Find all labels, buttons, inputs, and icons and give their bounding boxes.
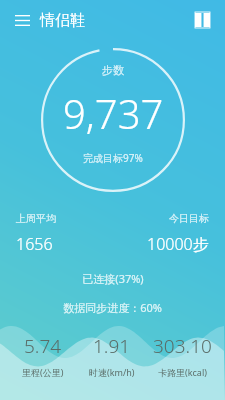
staticText: 卡路里(kcal) (158, 366, 207, 378)
staticText: 完成目标97% (83, 151, 143, 165)
staticText: 已连接(37%) (82, 271, 144, 286)
staticText: 9,737 (63, 86, 164, 140)
staticText: 1656 (16, 233, 53, 255)
button[interactable]: 5.74 (8, 333, 77, 378)
staticText: 上周平均 (16, 212, 56, 225)
button[interactable]: Map (185, 3, 219, 37)
staticText: 303.10 (153, 333, 212, 359)
staticText: 里程(公里) (22, 366, 64, 378)
staticText: 今日目标 (169, 212, 209, 225)
staticText: 时速(km/h) (89, 366, 135, 378)
staticText: 步数 (102, 63, 124, 77)
staticText: 5.74 (24, 333, 62, 359)
button[interactable]: 303.10 (147, 333, 217, 378)
staticText: 1.91 (93, 333, 131, 359)
button[interactable]: 1.91 (77, 333, 147, 378)
staticText: 数据同步进度：60% (63, 300, 162, 315)
staticText: 10000步 (147, 233, 209, 255)
button[interactable]: Menu (4, 2, 40, 38)
staticText: 情侣鞋 (40, 11, 85, 30)
